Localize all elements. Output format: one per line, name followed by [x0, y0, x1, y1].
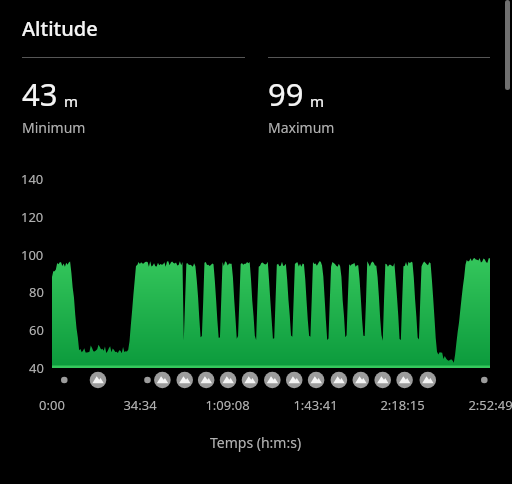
button[interactable]: 43 — [22, 57, 245, 137]
staticText: 34:34 — [123, 396, 157, 414]
other: Scroll position — [505, 0, 510, 90]
staticText: 99 — [268, 73, 304, 115]
staticText: Altitude — [22, 15, 98, 42]
staticText: 43 — [22, 73, 58, 115]
staticText: 2:52:49 — [468, 396, 512, 414]
button[interactable]: 99 — [268, 57, 490, 137]
staticText: m — [310, 91, 325, 111]
staticText: 40 — [29, 359, 44, 377]
staticText: m — [64, 91, 79, 111]
staticText: Temps (h:m:s) — [210, 433, 302, 452]
staticText: Minimum — [22, 118, 86, 137]
staticText: 2:18:15 — [380, 396, 425, 414]
staticText: 1:09:08 — [205, 396, 250, 414]
staticText: 0:00 — [39, 396, 65, 414]
staticText: 140 — [21, 170, 44, 188]
staticText: 120 — [21, 208, 44, 226]
staticText: 100 — [21, 246, 44, 264]
staticText: Maximum — [268, 118, 335, 137]
staticText: 1:43:41 — [293, 396, 338, 414]
staticText: 80 — [29, 283, 44, 301]
staticText: 60 — [29, 321, 44, 339]
